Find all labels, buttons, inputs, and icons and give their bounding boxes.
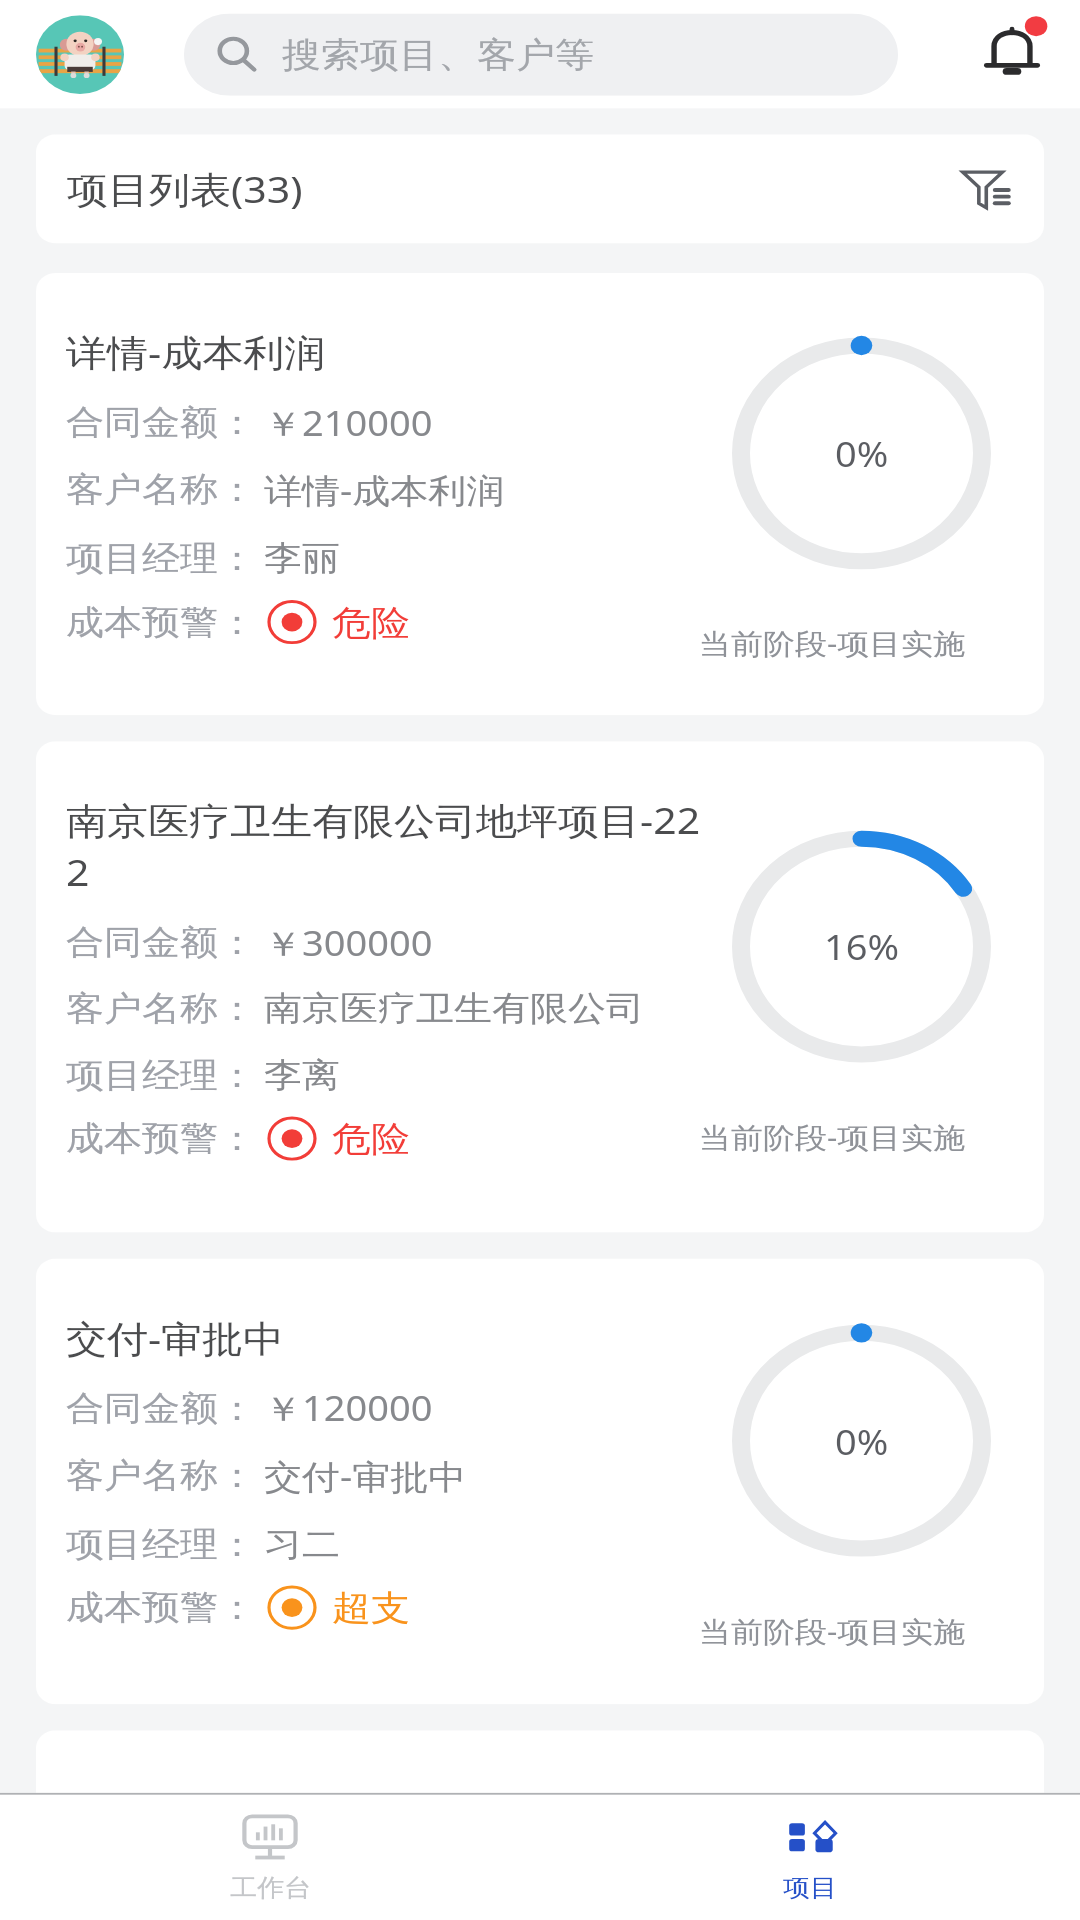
staticText: 项目经理：: [66, 1523, 256, 1566]
staticText: 0%: [835, 1418, 889, 1464]
staticText: 项目经理：: [66, 1053, 256, 1096]
staticText: 南京医疗卫生有限公司地坪项目-22 2: [66, 795, 701, 897]
staticText: 项目经理：: [66, 537, 256, 580]
button[interactable]: Profile: [36, 15, 124, 94]
staticText: 客户名称：: [66, 468, 256, 511]
staticText: ￥210000: [264, 399, 433, 446]
staticText: 交付-审批中: [66, 1312, 285, 1362]
button[interactable]: Filter: [948, 151, 1032, 226]
staticText: 详情-成本利润: [264, 466, 505, 513]
staticText: 工作台: [230, 1873, 311, 1903]
staticText: 0%: [835, 430, 889, 477]
staticText: 李离: [264, 1053, 340, 1096]
button[interactable]: Notifications: [966, 13, 1058, 96]
staticText: 项目: [783, 1873, 837, 1903]
staticText: 习二: [264, 1523, 340, 1566]
staticText: 危险: [332, 601, 410, 644]
staticText: 详情-成本利润: [66, 327, 326, 377]
staticText: 当前阶段-项目实施: [699, 1611, 966, 1651]
staticText: 超支: [332, 1586, 410, 1630]
button[interactable]: 交付-审批中: [36, 1258, 1044, 1704]
staticText: 南京医疗卫生有限公司: [264, 986, 644, 1029]
staticText: 危险: [332, 1117, 410, 1161]
button[interactable]: 项目列表(33): [36, 134, 1044, 243]
staticText: 合同金额：: [66, 1386, 256, 1429]
button[interactable]: 工作台: [0, 1795, 540, 1920]
staticText: ￥120000: [264, 1385, 433, 1431]
staticText: 合同金额：: [66, 921, 256, 964]
staticText: 项目列表(33): [67, 164, 303, 214]
staticText: 成本预警：: [66, 601, 256, 644]
staticText: 客户名称：: [66, 986, 256, 1029]
staticText: 成本预警：: [66, 1586, 256, 1629]
staticText: 李丽: [264, 537, 340, 580]
button[interactable]: 搜索项目、客户等: [184, 13, 898, 96]
staticText: 交付-审批中: [264, 1452, 467, 1498]
staticText: 合同金额：: [66, 401, 256, 444]
button[interactable]: 详情-成本利润: [36, 273, 1044, 715]
staticText: 客户名称：: [66, 1454, 256, 1497]
staticText: 当前阶段-项目实施: [699, 624, 966, 663]
button[interactable]: 南京医疗卫生有限公司地坪项目-22 2: [36, 741, 1044, 1232]
staticText: 搜索项目、客户等: [282, 33, 594, 77]
staticText: 16%: [824, 924, 900, 970]
button[interactable]: 项目: [540, 1795, 1080, 1920]
staticText: ￥300000: [264, 919, 433, 966]
staticText: 成本预警：: [66, 1117, 256, 1160]
staticText: 当前阶段-项目实施: [699, 1117, 966, 1156]
